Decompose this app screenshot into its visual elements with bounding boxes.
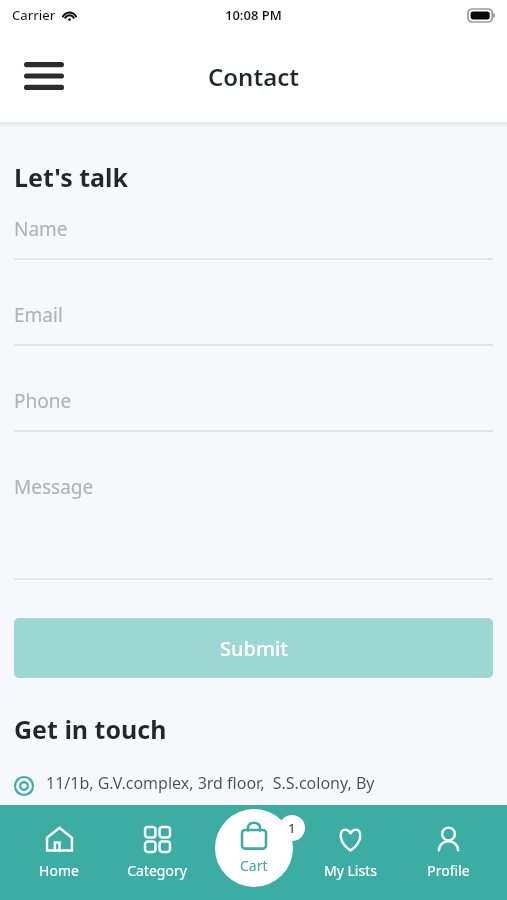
- button[interactable]: Phone: [14, 388, 493, 432]
- staticText: Contact: [208, 60, 300, 93]
- button[interactable]: Menu: [14, 50, 74, 102]
- staticText: Submit: [220, 635, 288, 662]
- button[interactable]: My Lists: [311, 805, 389, 900]
- button[interactable]: Submit: [14, 618, 493, 678]
- staticText: Profile: [427, 861, 470, 880]
- staticText: Get in touch: [14, 712, 167, 746]
- staticText: Let's talk: [14, 160, 128, 194]
- button[interactable]: Profile: [409, 805, 487, 900]
- button[interactable]: Message: [14, 474, 493, 580]
- staticText: My Lists: [324, 861, 377, 880]
- staticText: 10:08 PM: [225, 6, 282, 24]
- staticText: 11/1b, G.V.complex, 3rd floor, S.S.colon…: [46, 772, 375, 794]
- button[interactable]: Name: [14, 216, 493, 260]
- button[interactable]: Category: [118, 805, 196, 900]
- staticText: 1: [288, 819, 296, 837]
- button[interactable]: Cart: [215, 809, 293, 887]
- staticText: Cart: [240, 856, 268, 875]
- button[interactable]: Home: [20, 805, 98, 900]
- staticText: Message: [14, 474, 94, 500]
- staticText: Home: [39, 861, 79, 880]
- staticText: Name: [14, 216, 68, 242]
- staticText: Phone: [14, 388, 72, 414]
- staticText: Category: [127, 861, 187, 880]
- button[interactable]: Email: [14, 302, 493, 346]
- staticText: Carrier: [12, 6, 56, 24]
- staticText: Email: [14, 302, 63, 328]
